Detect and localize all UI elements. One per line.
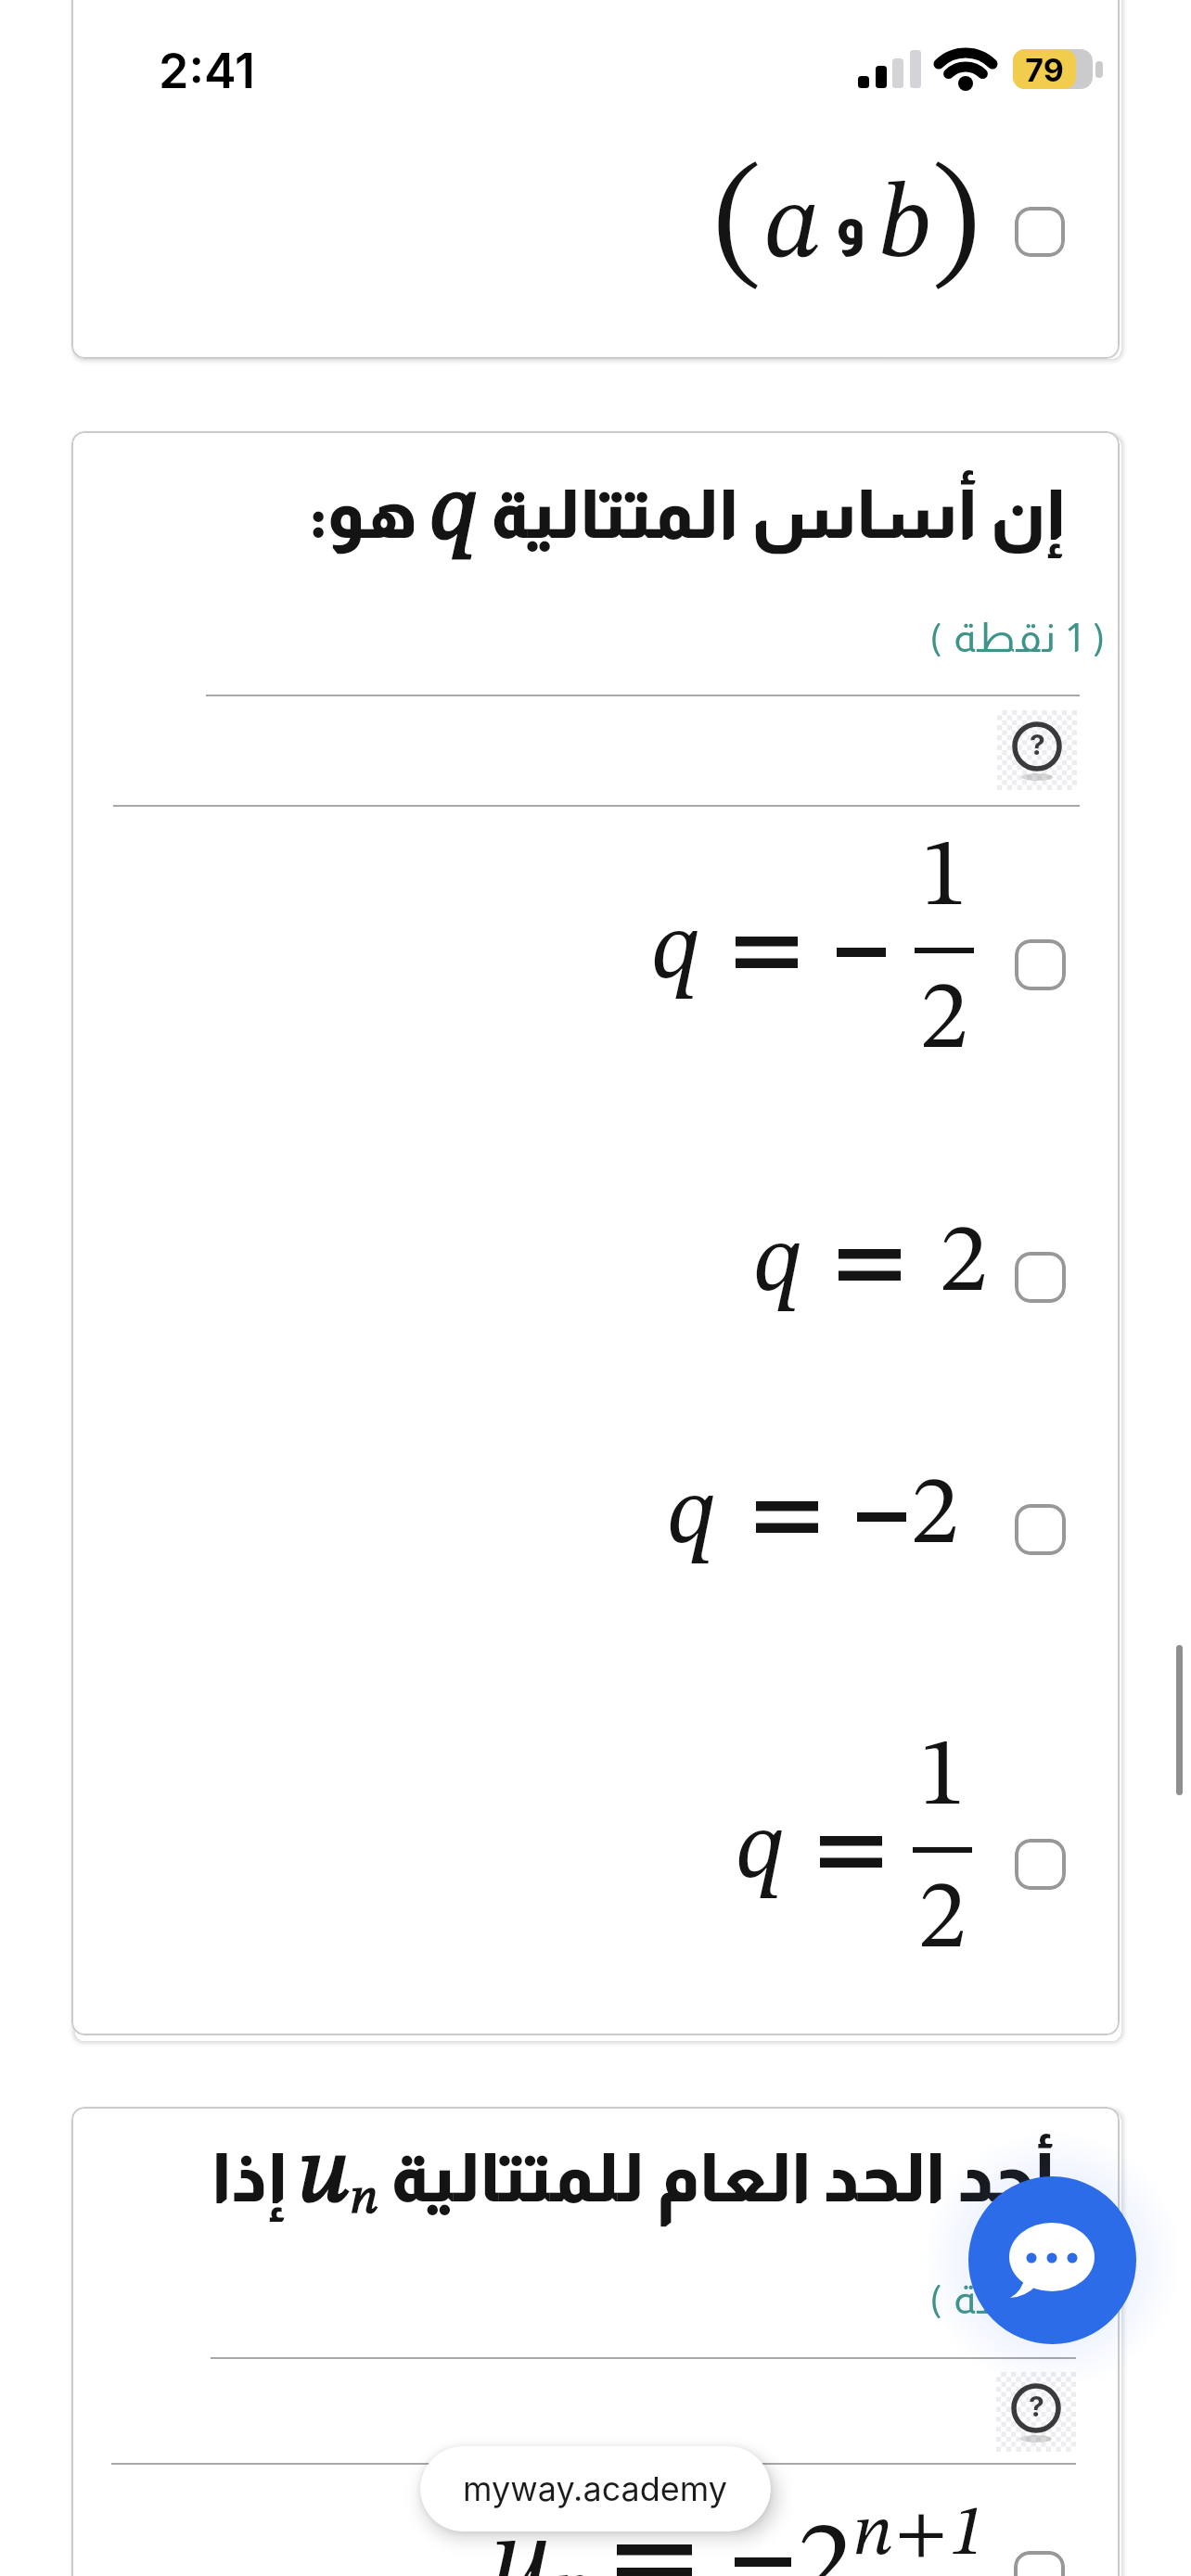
staticText: un — [491, 2509, 589, 2576]
staticText: q — [753, 1217, 803, 1313]
staticText: q — [736, 1804, 786, 1900]
staticText: 1 — [920, 831, 968, 927]
staticText: 1 — [918, 1730, 967, 1827]
staticText: ( — [714, 158, 762, 297]
staticText: 2n+1 — [797, 2499, 987, 2576]
staticText: q — [667, 1469, 717, 1565]
button[interactable] — [1014, 2551, 1065, 2576]
staticText: 2 — [918, 1873, 967, 1970]
staticText: 2 — [940, 1217, 988, 1313]
staticText: و — [826, 196, 876, 256]
staticText: 1 ) — [1057, 615, 1108, 660]
staticText: نقطة — [954, 615, 1057, 660]
button[interactable] — [1015, 1252, 1066, 1303]
button[interactable]: myway.academy — [420, 2446, 771, 2531]
staticText: myway.academy — [463, 2468, 728, 2509]
staticText: 79 — [1018, 51, 1070, 89]
staticText: أجد الحد العام للمتتالية un إذا — [211, 2131, 1055, 2225]
staticText: 2:41 — [159, 42, 255, 100]
staticText: q — [651, 904, 701, 1001]
button[interactable] — [1015, 207, 1065, 257]
staticText: إن أساس المتتالية q هو: — [309, 467, 1064, 560]
staticText: نقطة — [954, 2276, 1057, 2322]
button[interactable]: ? — [997, 710, 1077, 790]
staticText: ? — [1029, 2390, 1044, 2423]
staticText: ( — [929, 2276, 954, 2322]
button[interactable] — [1015, 1504, 1066, 1555]
button[interactable]: ? — [996, 2372, 1076, 2452]
button[interactable] — [968, 2176, 1136, 2344]
button[interactable] — [1015, 1839, 1066, 1890]
staticText: b — [878, 174, 931, 281]
staticText: 2 — [920, 974, 968, 1070]
button[interactable] — [1015, 939, 1066, 990]
staticText: ( — [929, 615, 954, 660]
staticText: a — [764, 174, 822, 281]
staticText: ? — [1030, 728, 1045, 761]
staticText: 2 — [911, 1469, 959, 1565]
staticText: 1 ) — [1057, 2276, 1108, 2322]
staticText: ) — [931, 158, 980, 297]
